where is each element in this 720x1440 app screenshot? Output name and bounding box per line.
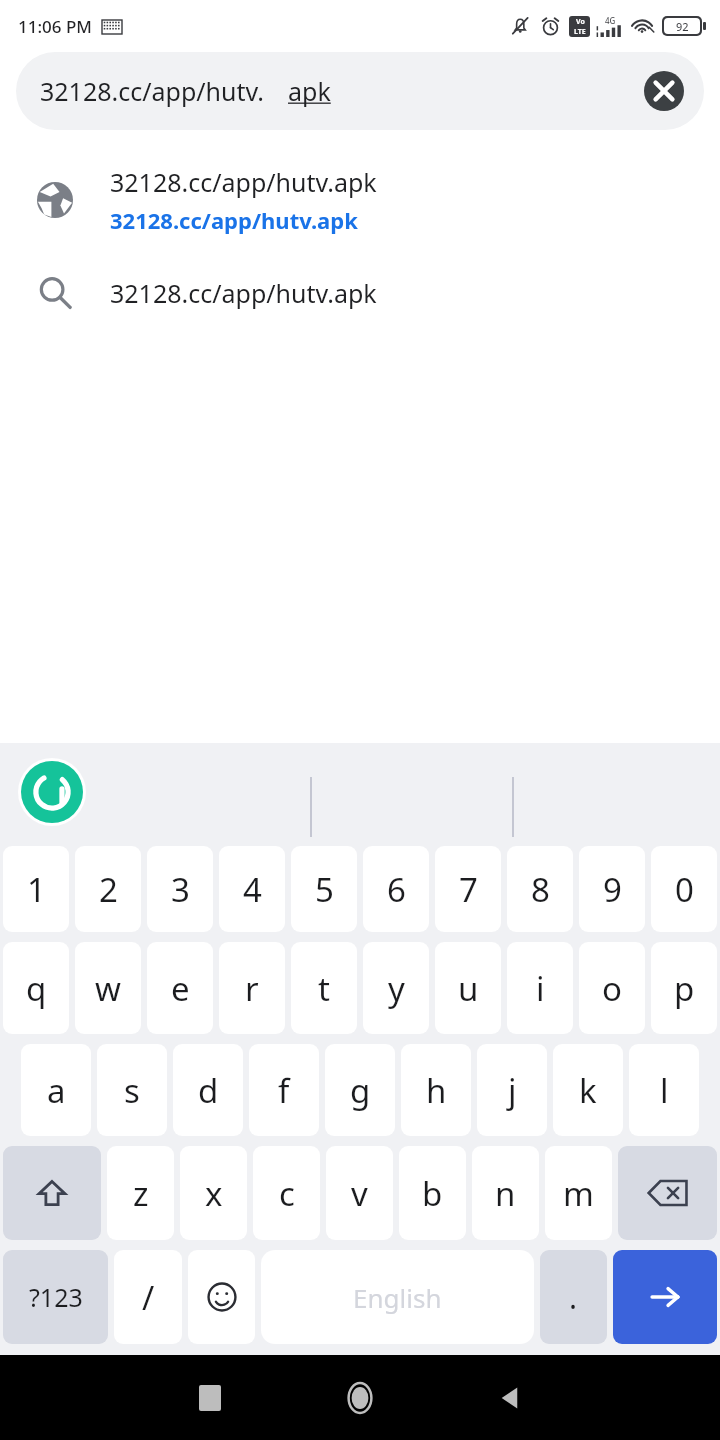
button[interactable]: d [173,1044,243,1136]
staticText: g [350,1068,371,1113]
button[interactable]: h [401,1044,471,1136]
button[interactable]: p [651,942,717,1034]
button[interactable]: Grammarly [21,761,83,823]
staticText: q [26,966,47,1011]
button[interactable]: i [507,942,573,1034]
button[interactable]: z [107,1146,174,1240]
staticText: j [508,1068,517,1113]
staticText: ?123 [29,1280,83,1314]
staticText: apk [288,74,331,108]
button[interactable]: v [326,1146,393,1240]
button[interactable]: u [435,942,501,1034]
button[interactable]: y [363,942,429,1034]
staticText: 4 [243,867,262,912]
button[interactable]: 8 [507,846,573,932]
staticText: 1 [27,867,46,912]
button[interactable]: 5 [291,846,357,932]
staticText: r [245,966,259,1011]
button[interactable]: c [253,1146,320,1240]
staticText: 32128.cc/app/hutv. [40,74,264,108]
button[interactable]: j [477,1044,547,1136]
button[interactable]: 7 [435,846,501,932]
button[interactable]: 32128.cc/app/hutv.apk [0,150,720,250]
button[interactable]: a [21,1044,91,1136]
staticText: y [388,966,405,1011]
staticText: o [602,966,622,1011]
staticText: Vo [576,17,585,27]
button[interactable]: s [97,1044,167,1136]
staticText: 8 [531,867,550,912]
button[interactable]: r [219,942,285,1034]
button[interactable]: t [291,942,357,1034]
button[interactable]: o [579,942,645,1034]
staticText: w [95,966,121,1011]
staticText: t [318,966,330,1011]
button[interactable]: 1 [3,846,69,932]
button[interactable]: Recents [175,1363,245,1433]
button[interactable]: Shift [3,1146,101,1240]
staticText: 9 [603,867,622,912]
button[interactable]: / [114,1250,182,1344]
staticText: p [674,966,695,1011]
staticText: n [495,1171,516,1216]
button[interactable]: q [3,942,69,1034]
button[interactable]: f [249,1044,319,1136]
staticText: 5 [315,867,334,912]
staticText: 11:06 PM [18,15,92,38]
staticText: 32128.cc/app/hutv.apk [110,205,358,235]
staticText: x [205,1171,223,1216]
button[interactable]: 0 [651,846,717,932]
button[interactable]: . [540,1250,607,1344]
staticText: c [279,1171,295,1216]
button[interactable]: English [261,1250,534,1344]
button[interactable]: e [147,942,213,1034]
staticText: 32128.cc/app/hutv.apk [110,165,377,199]
button[interactable]: b [399,1146,466,1240]
staticText: z [133,1171,149,1216]
staticText: a [47,1068,66,1113]
button[interactable]: x [180,1146,247,1240]
button[interactable]: 32128.cc/app/hutv. [16,52,704,130]
staticText: k [579,1068,597,1113]
button[interactable]: 9 [579,846,645,932]
button[interactable]: Go [613,1250,717,1344]
staticText: 0 [675,867,694,912]
staticText: 7 [459,867,478,912]
button[interactable]: k [553,1044,623,1136]
button[interactable]: w [75,942,141,1034]
button[interactable]: 4 [219,846,285,932]
staticText: v [351,1171,368,1216]
staticText: h [426,1068,447,1113]
button[interactable]: Clear search [644,71,684,111]
button[interactable]: 3 [147,846,213,932]
staticText: English [353,1280,442,1315]
staticText: f [278,1068,290,1113]
button[interactable]: n [472,1146,539,1240]
staticText: d [198,1068,219,1113]
staticText: 3 [171,867,190,912]
button[interactable]: 2 [75,846,141,932]
staticText: i [536,966,545,1011]
button[interactable]: Home [325,1363,395,1433]
staticText: u [458,966,479,1011]
staticText: / [142,1275,155,1320]
staticText: 32128.cc/app/hutv.apk [110,276,377,310]
staticText: 6 [387,867,406,912]
button[interactable]: m [545,1146,612,1240]
staticText: 4G [605,15,616,26]
button[interactable]: l [629,1044,699,1136]
button[interactable]: g [325,1044,395,1136]
staticText: s [124,1068,140,1113]
staticText: . [569,1277,578,1318]
staticText: e [171,966,190,1011]
staticText: m [563,1171,594,1216]
button[interactable]: ?123 [3,1250,108,1344]
button[interactable]: Emoji [188,1250,255,1344]
button[interactable]: Back [475,1363,545,1433]
button[interactable]: Backspace [618,1146,717,1240]
button[interactable]: 6 [363,846,429,932]
staticText: 92 [676,19,689,34]
staticText: 2 [99,867,118,912]
staticText: l [660,1068,669,1113]
button[interactable]: 32128.cc/app/hutv.apk [0,250,720,336]
